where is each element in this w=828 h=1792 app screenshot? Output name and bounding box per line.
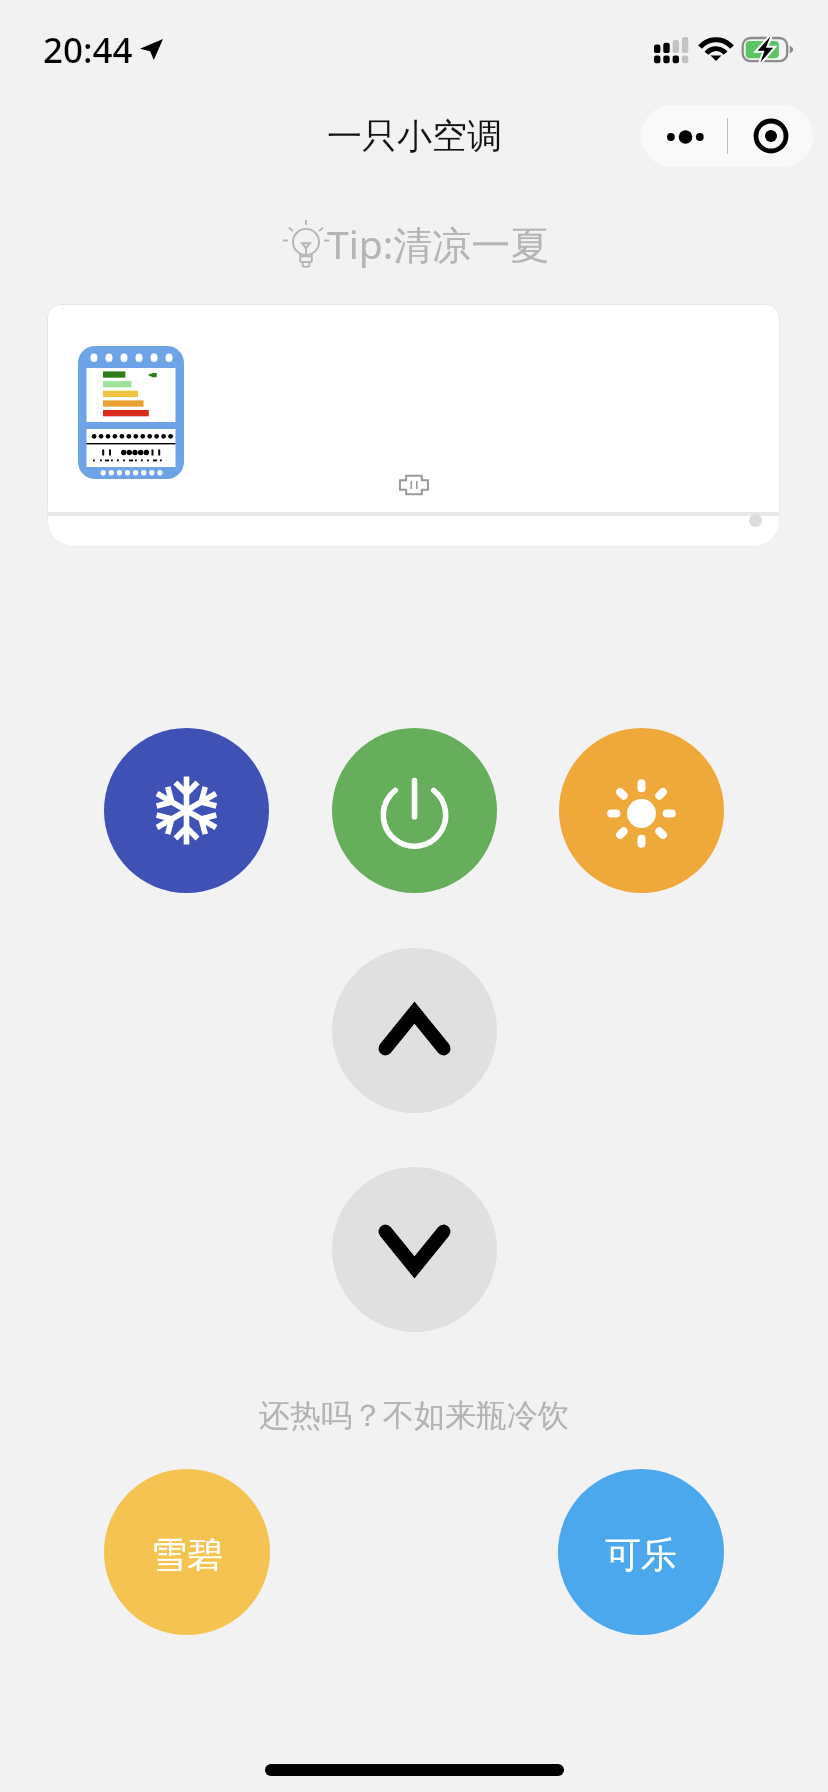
- button[interactable]: 可乐: [558, 1469, 724, 1635]
- staticText: 20:44: [43, 26, 133, 74]
- staticText: Tip:清凉一夏: [327, 217, 550, 270]
- button[interactable]: Temperature down: [332, 1167, 497, 1332]
- button[interactable]: More options: [641, 105, 813, 167]
- staticText: 还热吗？不如来瓶冷饮: [0, 1396, 828, 1435]
- button[interactable]: 雪碧: [104, 1469, 270, 1635]
- button[interactable]: Temperature up: [332, 948, 497, 1113]
- staticText: 雪碧: [151, 1532, 223, 1577]
- staticText: 一只小空调: [327, 114, 502, 158]
- button[interactable]: Power: [332, 728, 497, 893]
- button[interactable]: Cool mode: [104, 728, 269, 893]
- staticText: 可乐: [605, 1532, 677, 1577]
- button[interactable]: Heat mode: [559, 728, 724, 893]
